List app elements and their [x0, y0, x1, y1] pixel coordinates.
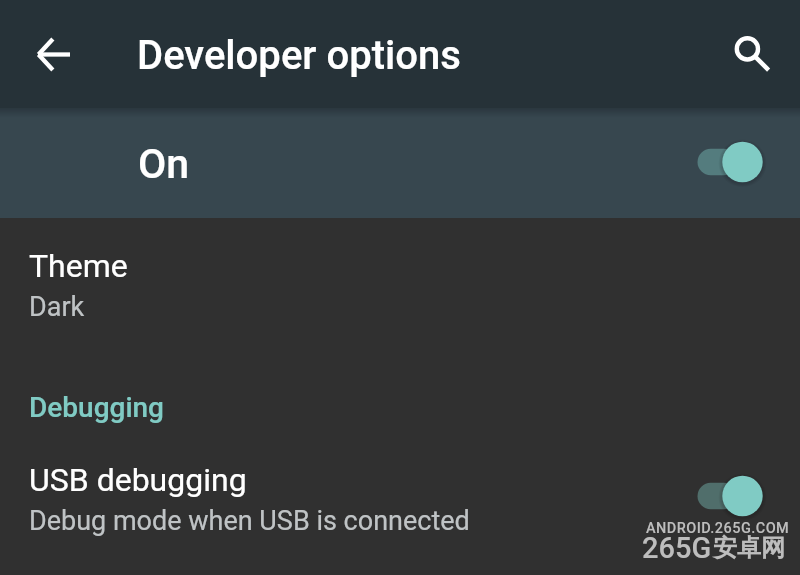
staticText: Debugging: [29, 391, 164, 424]
button[interactable]: On: [0, 108, 800, 218]
staticText: ANDROID.265G.COM: [646, 520, 790, 537]
staticText: USB debugging: [29, 461, 247, 499]
button[interactable]: Back: [13, 14, 93, 94]
staticText: 265G: [642, 531, 712, 565]
button[interactable]: Toggle USB debugging: [688, 462, 776, 530]
staticText: Dark: [29, 291, 85, 323]
staticText: Theme: [29, 247, 128, 285]
button[interactable]: Search: [707, 14, 787, 94]
button[interactable]: Toggle developer options: [688, 128, 776, 196]
button[interactable]: USB debugging: [0, 428, 800, 575]
button[interactable]: Theme: [0, 218, 800, 368]
staticText: Debug mode when USB is connected: [29, 505, 470, 537]
staticText: 安卓网: [713, 533, 785, 563]
staticText: On: [138, 140, 190, 188]
staticText: Developer options: [137, 32, 461, 79]
